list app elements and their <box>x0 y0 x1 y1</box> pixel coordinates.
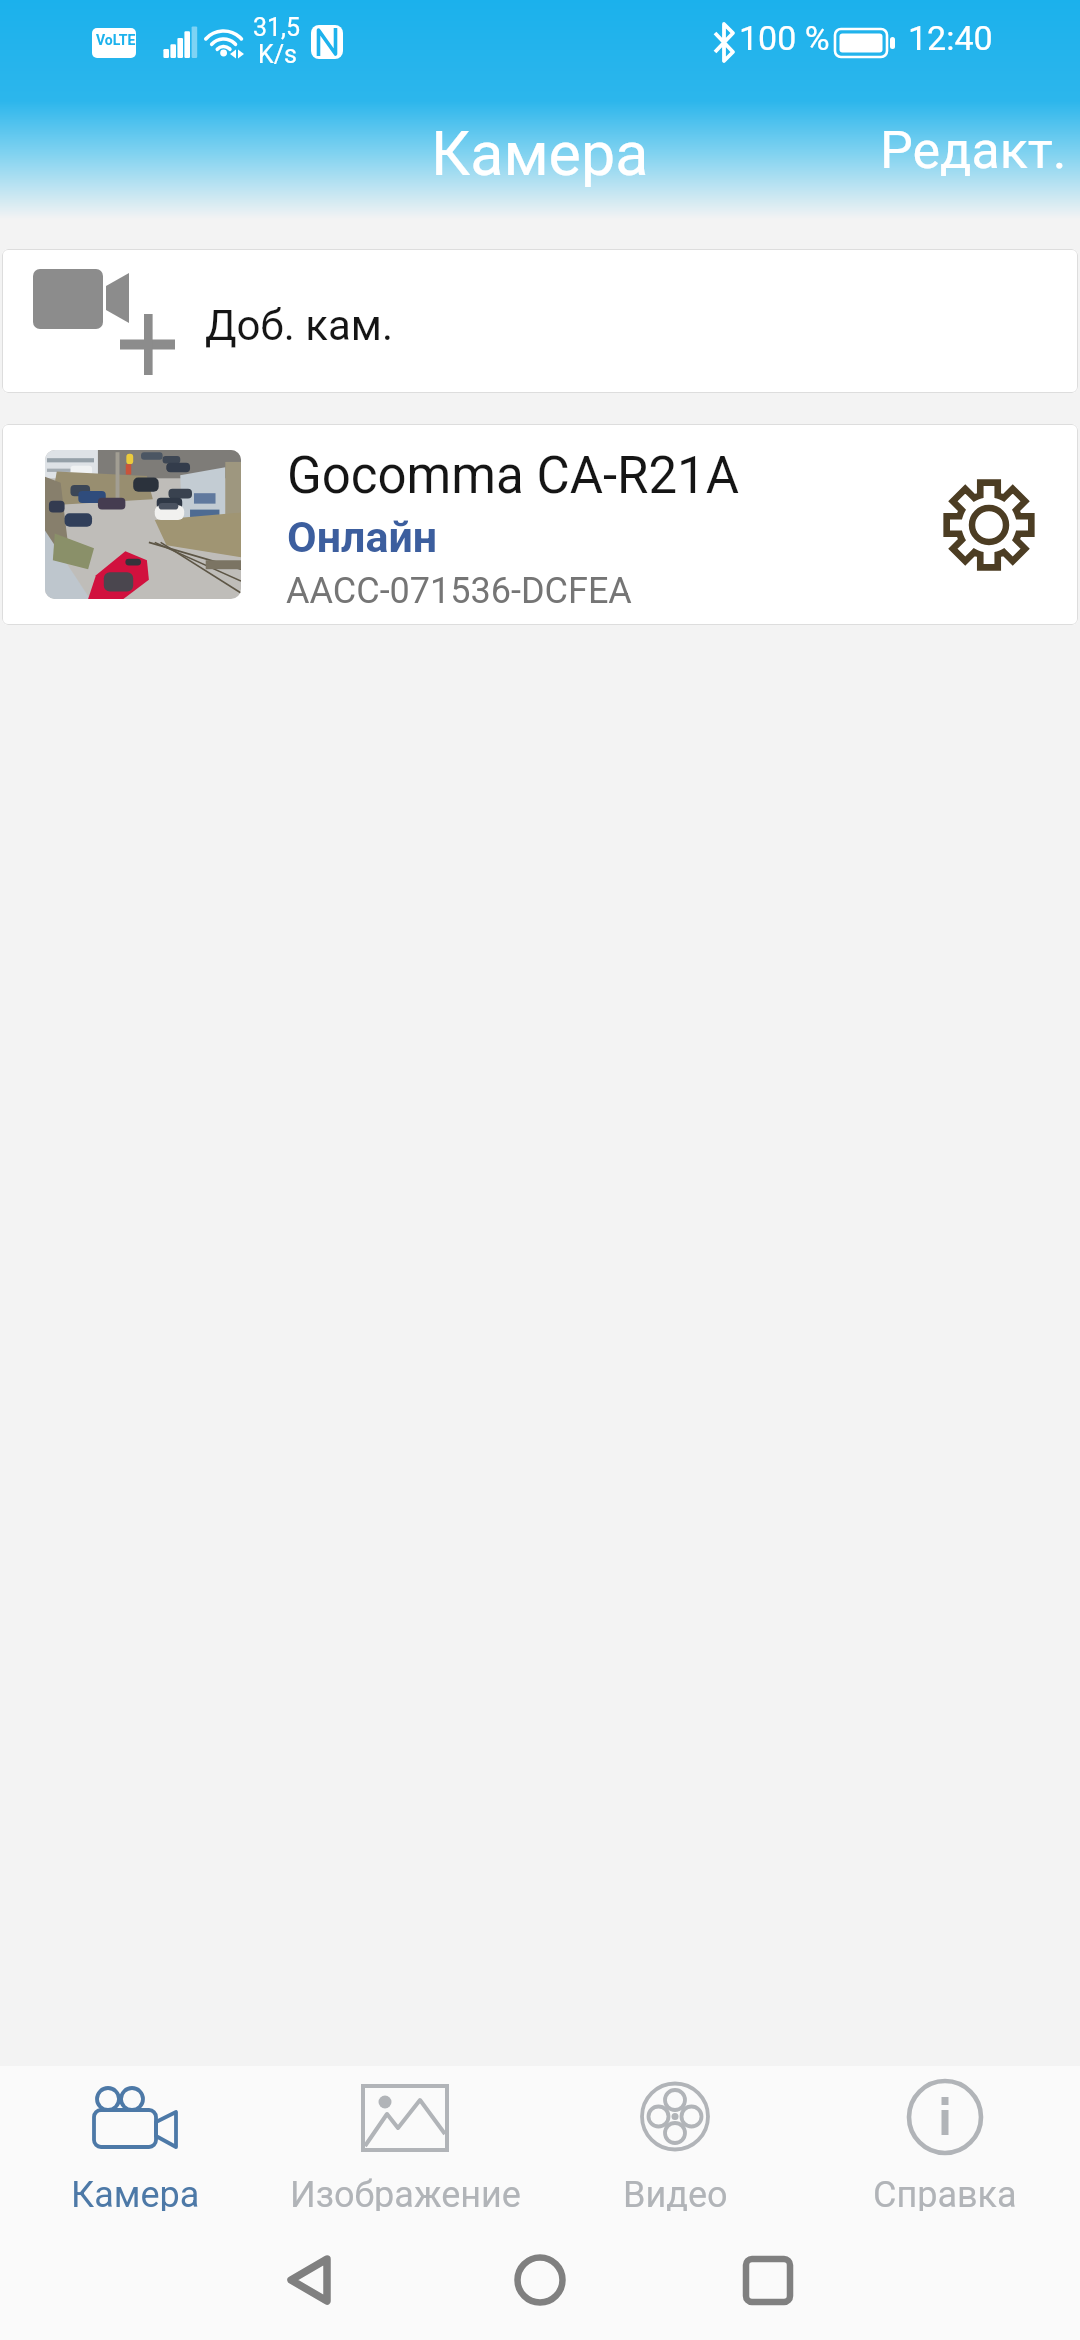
button[interactable]: Recents <box>708 2225 828 2335</box>
staticText: AACC-071536-DCFEA <box>286 570 632 612</box>
staticText: 100 % <box>739 18 830 58</box>
staticText: Редакт. <box>880 120 1067 181</box>
staticText: 31,5 <box>253 13 301 42</box>
staticText: Камера <box>71 2174 200 2216</box>
staticText: K/s <box>258 40 297 69</box>
button[interactable]: Редакт. <box>852 108 1080 192</box>
staticText: Онлайн <box>287 512 438 562</box>
button[interactable]: Home <box>480 2225 600 2335</box>
staticText: Gocomma CA-R21A <box>287 446 740 506</box>
button[interactable]: Settings <box>924 455 1054 595</box>
button[interactable]: Изображение <box>270 2066 540 2211</box>
button[interactable]: Back <box>248 2225 368 2335</box>
staticText: 12:40 <box>908 18 993 58</box>
staticText: Видео <box>623 2174 728 2216</box>
staticText: Изображение <box>290 2174 521 2216</box>
button[interactable]: Справка <box>810 2066 1080 2211</box>
button[interactable]: Видео <box>540 2066 810 2211</box>
staticText: Камера <box>431 118 649 189</box>
button[interactable]: Камера <box>0 2066 270 2211</box>
staticText: Доб. кам. <box>205 301 394 350</box>
staticText: VoLTE <box>96 32 136 48</box>
staticText: Справка <box>873 2174 1017 2216</box>
button[interactable]: Доб. кам. <box>2 249 1078 393</box>
button[interactable]: Gocomma CA-R21A <box>2 424 1078 625</box>
